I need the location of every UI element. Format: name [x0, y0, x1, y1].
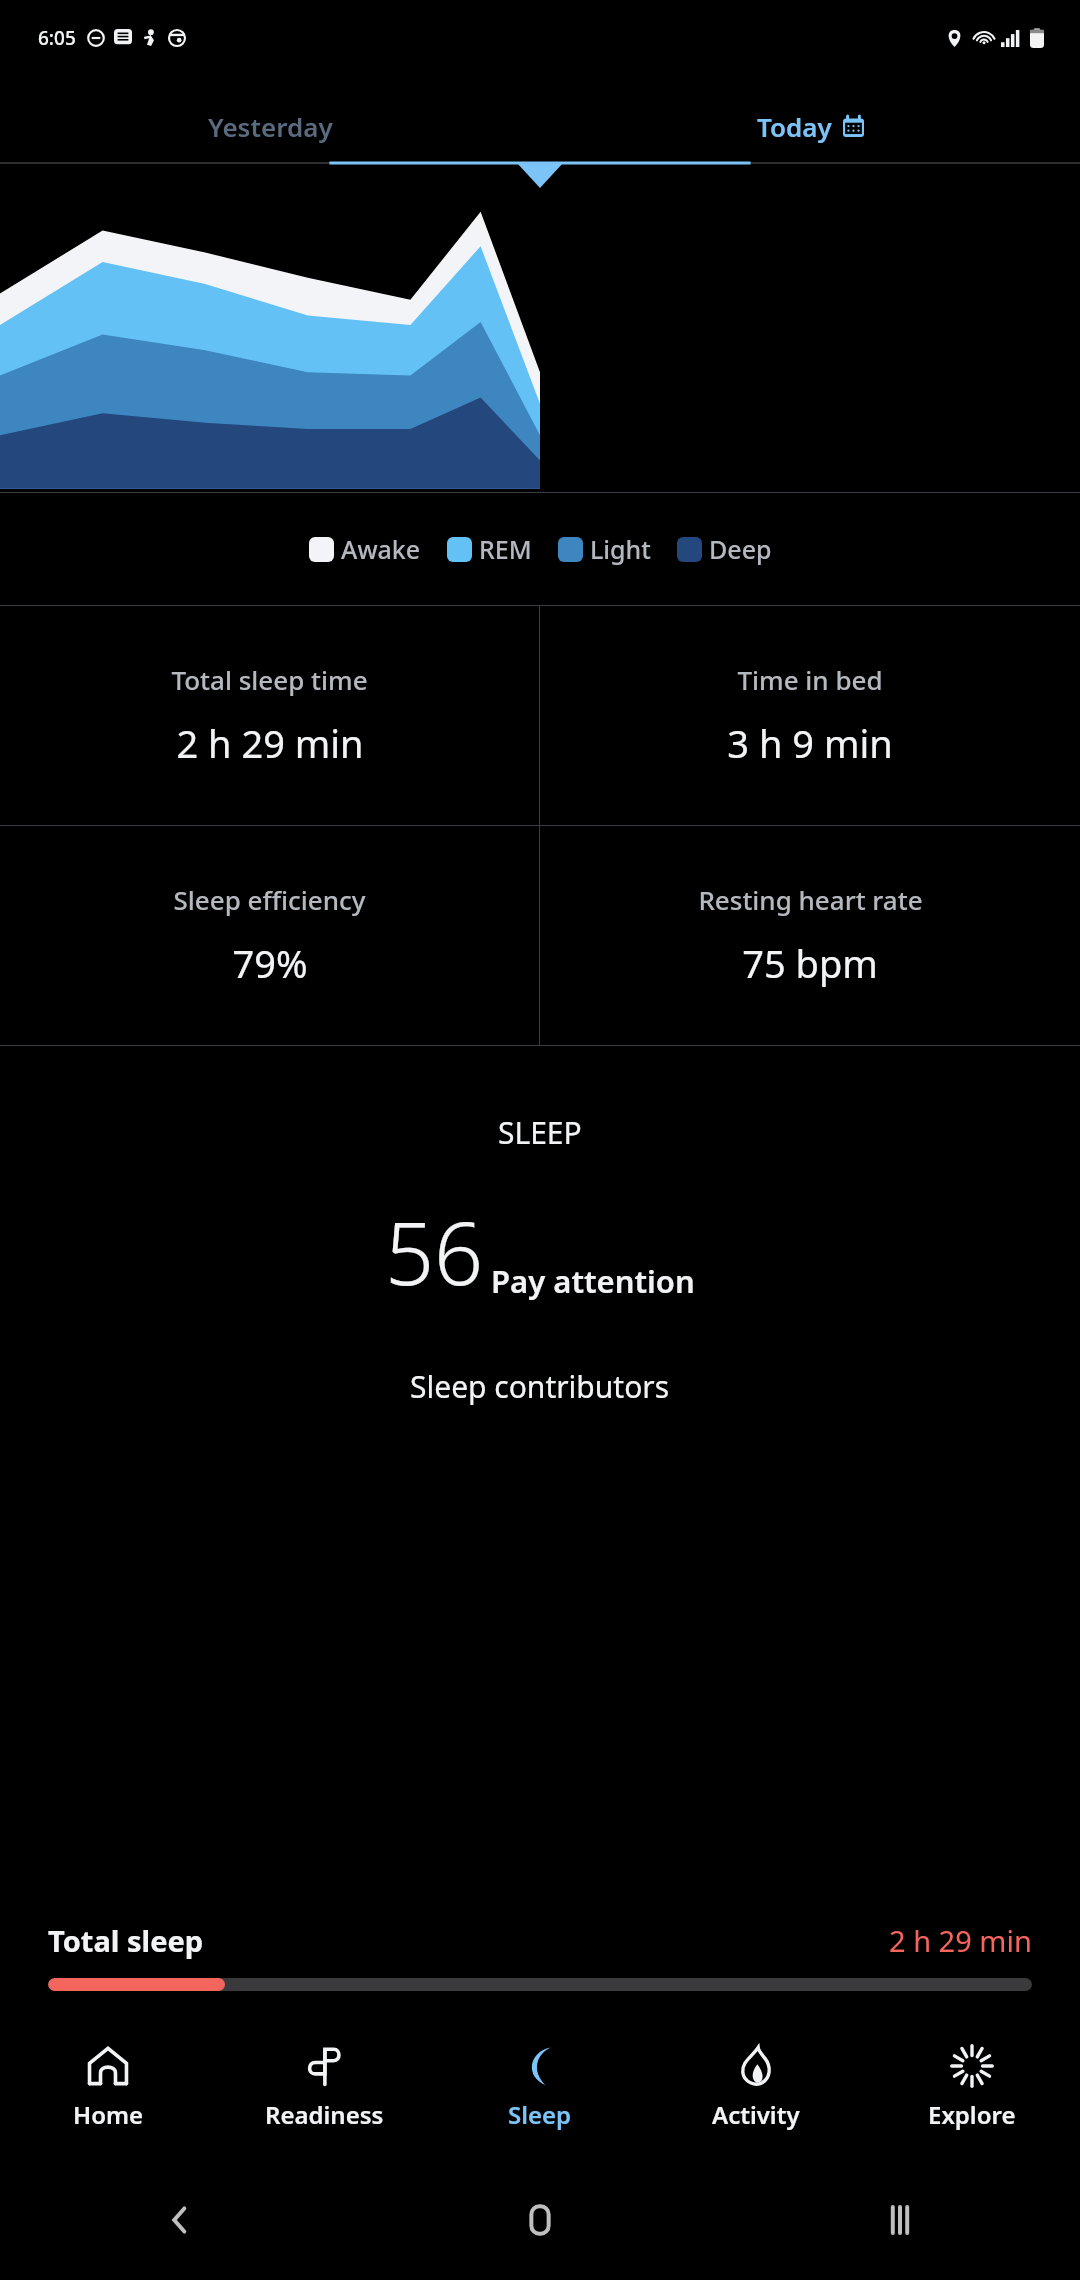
staticText: 3 h 9 min [727, 717, 893, 769]
staticText: Readiness [265, 2098, 384, 2131]
staticText: Deep [709, 532, 772, 566]
staticText: Sleep [508, 2098, 572, 2131]
button[interactable]: Back [0, 2160, 360, 2280]
button[interactable]: Home [0, 2015, 216, 2160]
button[interactable]: Today [540, 76, 1080, 177]
staticText: Activity [712, 2098, 800, 2131]
button[interactable]: Total sleep time [0, 606, 539, 825]
staticText: 2 h 29 min [176, 717, 364, 769]
staticText: 56 [385, 1193, 484, 1310]
button[interactable]: Total sleep [0, 1921, 1080, 1991]
staticText: 2 h 29 min [889, 1921, 1032, 1960]
staticText: Today [757, 109, 832, 144]
button[interactable]: Activity [648, 2015, 864, 2160]
button[interactable]: Time in bed [540, 606, 1080, 825]
staticText: 79% [232, 937, 308, 989]
button[interactable]: Explore [864, 2015, 1080, 2160]
staticText: Pay attention [491, 1260, 695, 1302]
staticText: 75 bpm [742, 937, 878, 989]
staticText: REM [479, 532, 532, 566]
staticText: 6:05 [38, 25, 76, 51]
staticText: Yesterday [208, 109, 333, 144]
staticText: SLEEP [498, 1112, 582, 1153]
staticText: Total sleep time [171, 662, 368, 697]
button[interactable]: Sleep [432, 2015, 648, 2160]
button[interactable]: Home [360, 2160, 720, 2280]
staticText: Awake [341, 532, 421, 566]
button[interactable]: Readiness [216, 2015, 432, 2160]
staticText: Sleep contributors [410, 1366, 670, 1407]
staticText: Resting heart rate [698, 882, 923, 917]
staticText: Sleep efficiency [173, 882, 366, 917]
button[interactable]: Resting heart rate [540, 826, 1080, 1045]
staticText: Explore [928, 2098, 1016, 2131]
staticText: Home [73, 2098, 144, 2131]
button[interactable]: Sleep efficiency [0, 826, 539, 1045]
button[interactable]: Recent apps [720, 2160, 1080, 2280]
staticText: Time in bed [737, 662, 883, 697]
button[interactable]: Yesterday [0, 76, 540, 177]
staticText: Total sleep [48, 1921, 204, 1960]
staticText: Light [590, 532, 651, 566]
